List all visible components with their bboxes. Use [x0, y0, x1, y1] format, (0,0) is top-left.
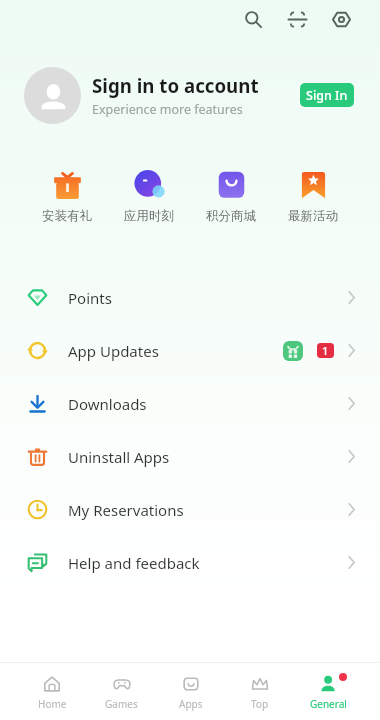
button[interactable]: 应用时刻 [108, 164, 190, 224]
staticText: App Updates [68, 341, 159, 361]
staticText: Apps [179, 697, 203, 711]
button[interactable]: 安装有礼 [26, 164, 108, 224]
button[interactable]: General [294, 663, 363, 720]
button[interactable]: Downloads [0, 377, 380, 430]
staticText: 应用时刻 [124, 208, 174, 224]
staticText: 安装有礼 [42, 208, 92, 224]
button[interactable]: Help and feedback [0, 536, 380, 589]
staticText: Points [68, 288, 112, 308]
staticText: Top [251, 697, 269, 711]
staticText: Games [105, 697, 138, 711]
staticText: Downloads [68, 394, 147, 414]
staticText: Uninstall Apps [68, 447, 170, 467]
staticText: Home [38, 697, 67, 711]
button[interactable]: My Reservations [0, 483, 380, 536]
staticText: 积分商城 [206, 208, 256, 224]
button[interactable]: Uninstall Apps [0, 430, 380, 483]
button[interactable]: Games [87, 663, 156, 720]
button[interactable]: Scan [278, 0, 316, 38]
button[interactable]: Sign in to account [0, 66, 380, 124]
staticText: 最新活动 [288, 208, 338, 224]
staticText: General [310, 697, 347, 711]
button[interactable]: Search [234, 0, 272, 38]
staticText: My Reservations [68, 500, 184, 520]
button[interactable]: Settings [322, 0, 360, 38]
staticText: Experience more features [92, 101, 243, 118]
staticText: Sign in to account [92, 73, 259, 98]
button[interactable]: 积分商城 [190, 164, 272, 224]
button[interactable]: Sign In [300, 83, 354, 107]
button[interactable]: Apps [156, 663, 225, 720]
staticText: 1 [322, 343, 329, 358]
button[interactable]: 最新活动 [272, 164, 354, 224]
staticText: Sign In [306, 87, 348, 104]
staticText: Help and feedback [68, 553, 200, 573]
button[interactable]: Home [17, 663, 87, 720]
button[interactable]: Top [225, 663, 294, 720]
button[interactable]: Points [0, 271, 380, 324]
button[interactable]: App Updates [0, 324, 380, 377]
